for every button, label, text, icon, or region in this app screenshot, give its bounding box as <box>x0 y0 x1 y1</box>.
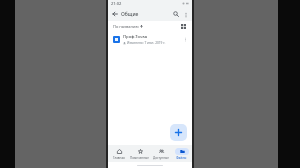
staticText: Проф.Точка <box>123 34 148 40</box>
button[interactable]: Search <box>171 9 181 19</box>
button[interactable]: Главная <box>108 145 129 162</box>
staticText: Помеченные <box>130 156 149 160</box>
staticText: По названию <box>113 24 139 29</box>
button[interactable]: По названию <box>112 23 144 30</box>
button[interactable]: Проф.Точка <box>108 32 192 46</box>
staticText: Общие <box>121 11 171 18</box>
button[interactable]: File options <box>181 35 190 44</box>
staticText: Изменено: 7 июл. 2019 г. <box>127 41 166 45</box>
button[interactable]: Доступные <box>150 145 171 162</box>
staticText: 21:02 <box>111 1 122 6</box>
staticText: Файлы <box>176 156 187 160</box>
button[interactable]: Switch to grid view <box>179 22 188 31</box>
button[interactable]: Файлы <box>171 145 192 162</box>
staticText: Главная <box>113 156 125 160</box>
button[interactable]: Back <box>110 9 120 19</box>
staticText: Доступные <box>153 156 169 160</box>
button[interactable]: Помеченные <box>129 145 150 162</box>
button[interactable]: Create new <box>170 124 187 141</box>
button[interactable]: More options <box>181 10 190 19</box>
